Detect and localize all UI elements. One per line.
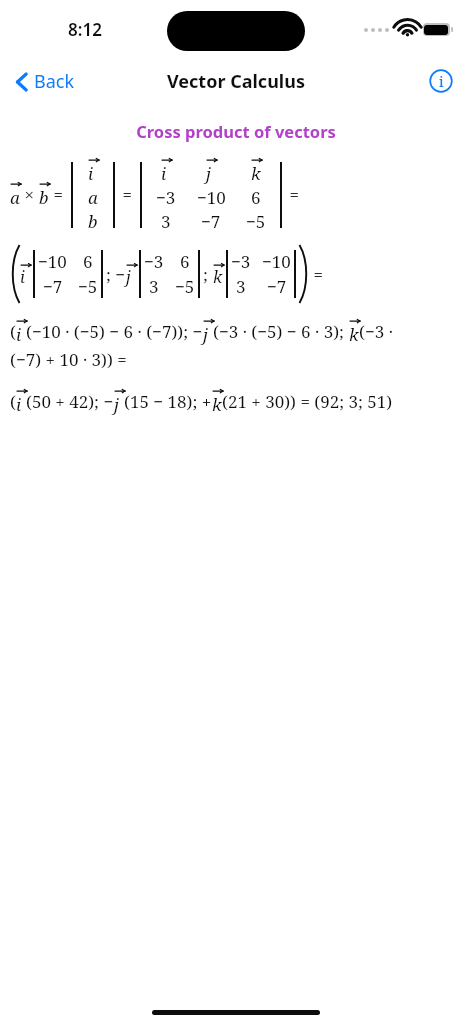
button[interactable]: Info: [426, 66, 456, 96]
staticText: 3: [236, 275, 246, 298]
staticText: −3: [231, 250, 251, 273]
staticText: 6: [83, 250, 93, 273]
button[interactable]: Back: [10, 65, 81, 98]
staticText: −5: [246, 210, 266, 233]
staticText: b: [88, 210, 98, 233]
staticText: i: [161, 162, 167, 185]
staticText: i: [439, 72, 444, 91]
staticText: ; −: [106, 263, 126, 286]
staticText: −10: [262, 250, 291, 273]
staticText: j: [126, 266, 131, 288]
staticText: 3: [149, 275, 159, 298]
staticText: i: [88, 162, 94, 185]
staticText: =: [309, 263, 323, 286]
staticText: 6: [180, 250, 190, 273]
staticText: 8:12: [68, 18, 102, 41]
staticText: ;: [203, 263, 213, 286]
staticText: (: [10, 320, 16, 343]
staticText: j: [114, 393, 119, 416]
staticText: (−10 · (−5) − 6 · (−7)); −: [26, 320, 203, 343]
staticText: −5: [175, 275, 195, 298]
staticText: Back: [34, 69, 75, 94]
staticText: −7: [201, 210, 221, 233]
staticText: −3: [144, 250, 164, 273]
staticText: i: [20, 266, 25, 288]
staticText: Cross product of vectors: [136, 120, 336, 142]
staticText: 6: [251, 186, 261, 209]
staticText: (21 + 30)) = (92; 3; 51): [222, 390, 393, 413]
staticText: (−3 · (−5) − 6 · 3);: [213, 320, 349, 343]
staticText: =: [285, 183, 299, 206]
staticText: a: [10, 186, 20, 209]
staticText: (15 − 18); +: [124, 390, 212, 413]
staticText: b: [39, 186, 49, 209]
staticText: −5: [78, 275, 98, 298]
staticText: (−7) + 10 · 3)) =: [10, 348, 127, 371]
staticText: −10: [197, 186, 226, 209]
staticText: j: [203, 323, 208, 346]
staticText: −3: [156, 186, 176, 209]
staticText: k: [213, 266, 223, 288]
staticText: (: [10, 390, 16, 413]
staticText: a: [88, 186, 98, 209]
staticText: −10: [38, 250, 67, 273]
staticText: −7: [43, 275, 63, 298]
staticText: (50 + 42); −: [26, 390, 114, 413]
staticText: i: [16, 323, 22, 346]
staticText: Vector Calculus: [167, 69, 305, 94]
staticText: =: [118, 183, 137, 206]
staticText: i: [16, 393, 22, 416]
staticText: ×: [20, 183, 39, 206]
staticText: =: [49, 183, 68, 206]
staticText: 3: [161, 210, 171, 233]
staticText: (−3 ·: [359, 320, 393, 343]
staticText: j: [206, 162, 211, 185]
staticText: k: [349, 323, 359, 346]
staticText: k: [212, 393, 222, 416]
staticText: −7: [267, 275, 287, 298]
staticText: k: [251, 162, 261, 185]
